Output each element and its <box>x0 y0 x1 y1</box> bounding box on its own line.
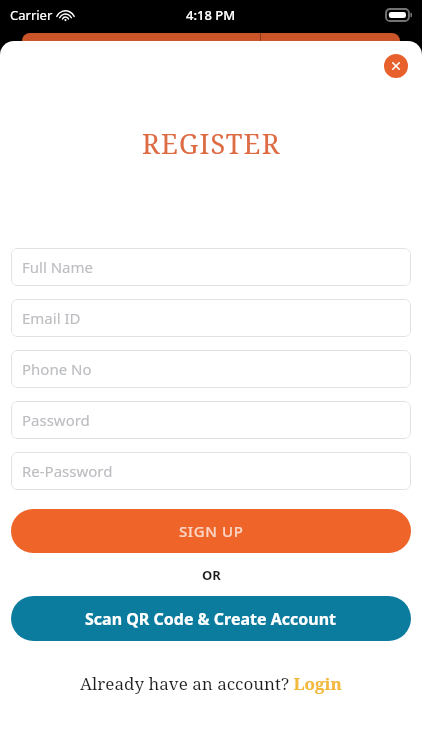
staticText: Already have an account? Login <box>80 672 342 695</box>
button[interactable]: Email ID <box>11 299 411 337</box>
button[interactable]: Close <box>384 54 408 78</box>
staticText: Password <box>22 410 90 430</box>
button[interactable]: Password <box>11 401 411 439</box>
staticText: Scan QR Code & Create Account <box>85 608 337 630</box>
staticText: SIGN UP <box>179 521 244 541</box>
staticText: 4:18 PM <box>186 6 236 24</box>
button[interactable]: Phone No <box>11 350 411 388</box>
staticText: Email ID <box>22 308 81 328</box>
staticText: REGISTER <box>142 125 281 162</box>
staticText: Re-Password <box>22 461 113 481</box>
staticText: Full Name <box>22 257 93 277</box>
staticText: OR <box>202 566 221 584</box>
staticText: Carrier <box>10 6 53 24</box>
button[interactable]: Scan QR Code & Create Account <box>11 596 411 641</box>
staticText: Phone No <box>22 359 92 379</box>
button[interactable]: Already have an account? Login <box>72 670 350 697</box>
button[interactable]: Re-Password <box>11 452 411 490</box>
button[interactable]: Full Name <box>11 248 411 286</box>
button[interactable]: SIGN UP <box>11 509 411 553</box>
